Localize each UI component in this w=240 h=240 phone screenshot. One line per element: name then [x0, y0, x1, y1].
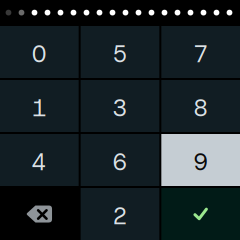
staticText: 6	[112, 147, 127, 177]
button[interactable]: 1	[0, 80, 79, 132]
button[interactable]: 4	[0, 134, 79, 186]
staticText: 8	[193, 93, 208, 123]
button[interactable]: 0	[0, 26, 79, 78]
button[interactable]: 7	[161, 26, 240, 78]
staticText: 9	[193, 147, 208, 177]
staticText: 5	[112, 39, 127, 69]
button[interactable]: Delete	[0, 188, 79, 240]
button[interactable]: 9	[161, 134, 240, 186]
button[interactable]: 6	[81, 134, 159, 186]
staticText: 2	[112, 201, 127, 231]
staticText: 7	[193, 39, 208, 69]
button[interactable]: 2	[81, 188, 159, 240]
button[interactable]: 3	[81, 80, 159, 132]
button[interactable]: 5	[81, 26, 159, 78]
staticText: 0	[32, 39, 47, 69]
staticText: 1	[32, 93, 47, 123]
staticText: 3	[112, 93, 127, 123]
button[interactable]: 8	[161, 80, 240, 132]
staticText: 4	[32, 147, 47, 177]
button[interactable]: Confirm	[161, 188, 240, 240]
